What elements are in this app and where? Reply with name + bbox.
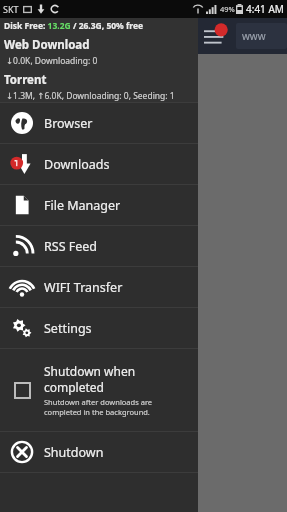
staticText: Disk Free: 13.2G / 26.3G, 50% free <box>4 20 144 32</box>
button[interactable]: File Manager <box>0 185 198 225</box>
button[interactable]: RSS Feed <box>0 226 198 266</box>
staticText: SKT <box>3 3 19 15</box>
staticText: Downloads <box>44 156 110 173</box>
staticText: Shutdown after downloads are <box>44 397 153 407</box>
button[interactable]: Shutdown <box>0 432 198 472</box>
staticText: www <box>242 29 266 43</box>
button[interactable]: Open menu <box>198 19 232 53</box>
staticText: ↓1.3M, ↑6.0K, Downloading: 0, Seeding: 1 <box>6 90 175 102</box>
staticText: ↓0.0K, Downloading: 0 <box>6 55 98 67</box>
staticText: 49% <box>220 4 235 14</box>
staticText: completed <box>44 379 104 395</box>
staticText: File Manager <box>44 197 121 214</box>
button[interactable]: Downloads <box>0 144 198 184</box>
button[interactable]: Shutdown when <box>0 349 198 431</box>
button[interactable]: Browser <box>0 103 198 143</box>
button[interactable]: www <box>236 23 287 49</box>
staticText: completed in the background. <box>44 407 150 417</box>
button[interactable]: WIFI Transfer <box>0 267 198 307</box>
staticText: Settings <box>44 320 92 337</box>
staticText: Web Download <box>4 37 90 53</box>
button[interactable]: Settings <box>0 308 198 348</box>
staticText: RSS Feed <box>44 238 98 255</box>
staticText: Browser <box>44 115 93 132</box>
staticText: Shutdown <box>44 444 104 461</box>
staticText: 4:41 AM <box>246 2 284 16</box>
staticText: Torrent <box>4 72 47 88</box>
staticText: WIFI Transfer <box>44 279 123 296</box>
staticText: Shutdown when <box>44 363 136 379</box>
